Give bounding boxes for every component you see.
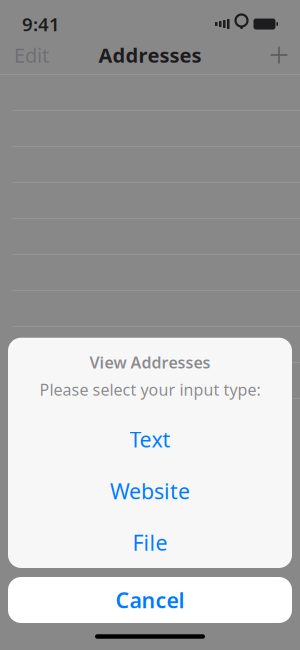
- button[interactable]: Add address: [258, 38, 300, 72]
- staticText: Please select your input type:: [39, 379, 260, 400]
- staticText: Cancel: [115, 586, 184, 614]
- button[interactable]: File: [8, 517, 292, 568]
- button[interactable]: Text: [8, 414, 292, 465]
- staticText: 9:41: [22, 12, 60, 36]
- staticText: Edit: [14, 42, 49, 68]
- button[interactable]: Edit: [0, 38, 63, 72]
- button[interactable]: Website: [8, 465, 292, 516]
- staticText: View Addresses: [89, 352, 210, 373]
- staticText: Addresses: [98, 42, 201, 68]
- staticText: Text: [129, 425, 170, 453]
- staticText: File: [132, 528, 167, 557]
- button[interactable]: Cancel: [8, 577, 292, 623]
- staticText: Website: [110, 477, 190, 505]
